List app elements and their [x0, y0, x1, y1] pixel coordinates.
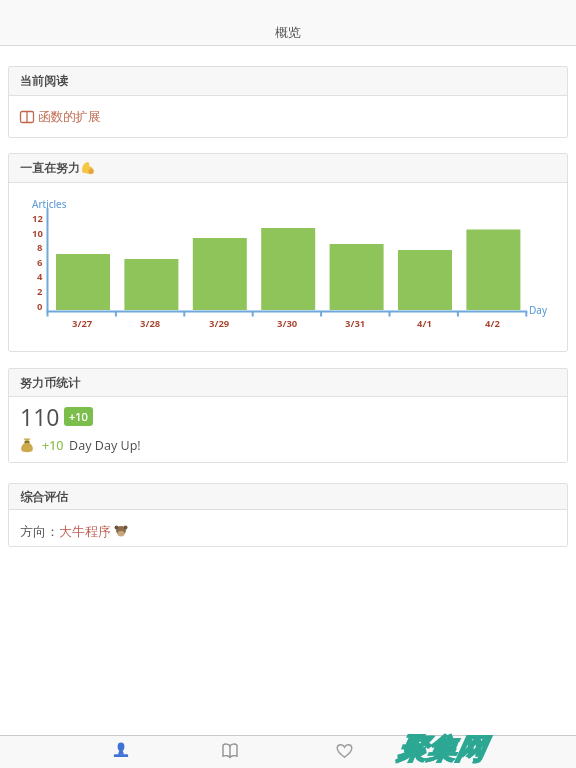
staticText: 努力币统计	[20, 375, 80, 390]
staticText: 一直在努力	[20, 160, 80, 175]
staticText: 4/1	[417, 317, 432, 330]
staticText: 8	[37, 241, 43, 254]
staticText: Day	[529, 303, 548, 317]
staticText: 当前阅读	[20, 73, 68, 88]
staticText: 4	[37, 270, 43, 283]
staticText: 聚集网	[397, 731, 484, 768]
staticText: 4/2	[485, 317, 500, 330]
staticText: 概览	[275, 24, 301, 40]
staticText: 2	[37, 285, 43, 298]
button[interactable]	[202, 736, 258, 768]
staticText: Articles	[32, 197, 67, 211]
button[interactable]	[316, 736, 372, 768]
staticText: 12	[32, 212, 43, 225]
staticText: 聚集网	[396, 731, 483, 768]
staticText: 110	[20, 401, 60, 431]
staticText: Day Day Up!	[69, 437, 141, 454]
staticText: 3/31	[345, 317, 366, 330]
staticText: 函数的扩展	[38, 109, 101, 125]
staticText: 6	[37, 256, 43, 269]
staticText: 0	[37, 300, 43, 313]
staticText: 3/27	[72, 317, 93, 330]
staticText: 综合评估	[20, 489, 68, 504]
staticText: 大牛程序	[59, 523, 111, 539]
staticText: +10	[69, 409, 88, 424]
staticText: 3/29	[209, 317, 230, 330]
staticText: +10	[42, 437, 64, 454]
staticText: 3/30	[277, 317, 298, 330]
button[interactable]	[93, 736, 149, 768]
button[interactable]	[430, 736, 486, 768]
staticText: 10	[32, 227, 43, 240]
staticText: 方向：	[20, 523, 59, 539]
button[interactable]: 函数的扩展	[8, 96, 568, 138]
staticText: 3/28	[140, 317, 161, 330]
